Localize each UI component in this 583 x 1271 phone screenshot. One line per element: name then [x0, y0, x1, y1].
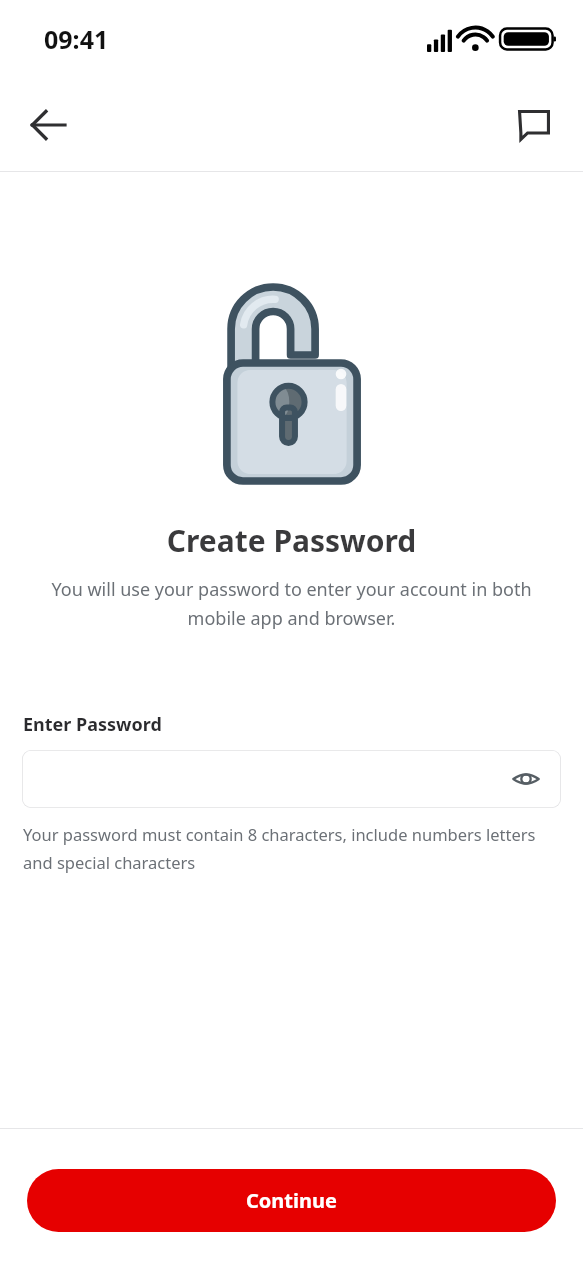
button[interactable]: Messages	[503, 94, 565, 156]
staticText: Continue	[246, 1187, 337, 1214]
staticText: Enter Password	[23, 712, 162, 737]
button[interactable]: Show password	[503, 756, 549, 802]
button[interactable]: Continue	[27, 1169, 556, 1232]
staticText: You will use your password to enter your…	[32, 577, 551, 630]
staticText: Your password must contain 8 characters,…	[23, 823, 553, 874]
button[interactable]: Show password	[22, 750, 561, 808]
button[interactable]: Back	[14, 91, 82, 159]
staticText: Create Password	[0, 520, 583, 561]
staticText: 09:41	[44, 22, 109, 56]
